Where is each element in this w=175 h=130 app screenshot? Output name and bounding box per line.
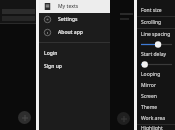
- button[interactable]: Start delay: [137, 49, 175, 60]
- button[interactable]: Font size: [137, 5, 175, 16]
- button[interactable]: Add text: [18, 111, 31, 124]
- staticText: Settings: [58, 16, 78, 23]
- staticText: Font size: [141, 7, 162, 14]
- staticText: Looping: [141, 71, 161, 78]
- staticText: Mirror: [141, 82, 156, 89]
- button[interactable]: Screen orientation: [137, 91, 175, 102]
- button[interactable]: Highlight center: [137, 125, 175, 130]
- staticText: My texts: [58, 3, 79, 10]
- button[interactable]: My texts: [39, 0, 110, 13]
- staticText: About app: [58, 29, 83, 36]
- staticText: Scrolling speed: [141, 19, 173, 26]
- staticText: Screen orientation: [141, 93, 173, 100]
- button[interactable]: Looping: [137, 69, 175, 80]
- staticText: Line spacing: [141, 31, 171, 38]
- button[interactable]: Slider: [137, 60, 175, 69]
- staticText: Login: [44, 50, 58, 57]
- button[interactable]: Add text: [117, 112, 130, 125]
- staticText: Highlight center: [141, 125, 173, 130]
- button[interactable]: Login: [39, 47, 110, 60]
- button[interactable]: Settings: [39, 13, 110, 26]
- button[interactable]: About app: [39, 26, 110, 39]
- staticText: Sign up: [44, 63, 62, 70]
- staticText: Work area width: [141, 115, 173, 122]
- button[interactable]: Mirror: [137, 80, 175, 91]
- button[interactable]: Sign up: [39, 60, 110, 73]
- button[interactable]: Theme: [137, 102, 175, 113]
- button[interactable]: Scrolling speed: [137, 17, 175, 28]
- staticText: Theme: [141, 104, 158, 111]
- staticText: Start delay: [141, 51, 167, 58]
- button[interactable]: Slider: [137, 40, 175, 49]
- button[interactable]: Line spacing: [137, 29, 175, 40]
- button[interactable]: Work area width: [137, 113, 175, 124]
